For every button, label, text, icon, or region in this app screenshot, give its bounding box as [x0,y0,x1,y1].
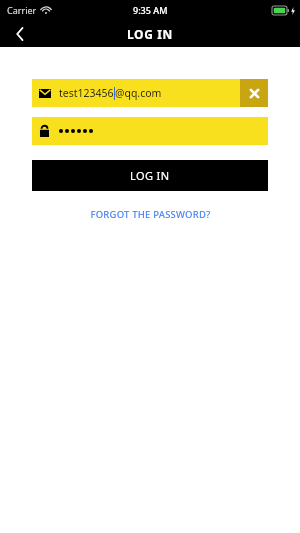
button[interactable] [32,117,268,145]
button[interactable]: test123456 [32,79,268,107]
button[interactable]: FORGOT THE PASSWORD? [90,208,211,221]
staticText: FORGOT THE PASSWORD? [90,208,211,221]
button[interactable]: LOG IN [32,160,268,191]
staticText: test123456 [59,86,114,100]
button[interactable]: Back [0,20,40,47]
staticText: Carrier [7,4,37,16]
staticText: LOG IN [127,26,173,42]
staticText: @qq.com [115,86,162,100]
button[interactable]: Clear [240,79,268,107]
staticText: LOG IN [130,168,170,183]
staticText: 9:35 AM [133,4,168,16]
